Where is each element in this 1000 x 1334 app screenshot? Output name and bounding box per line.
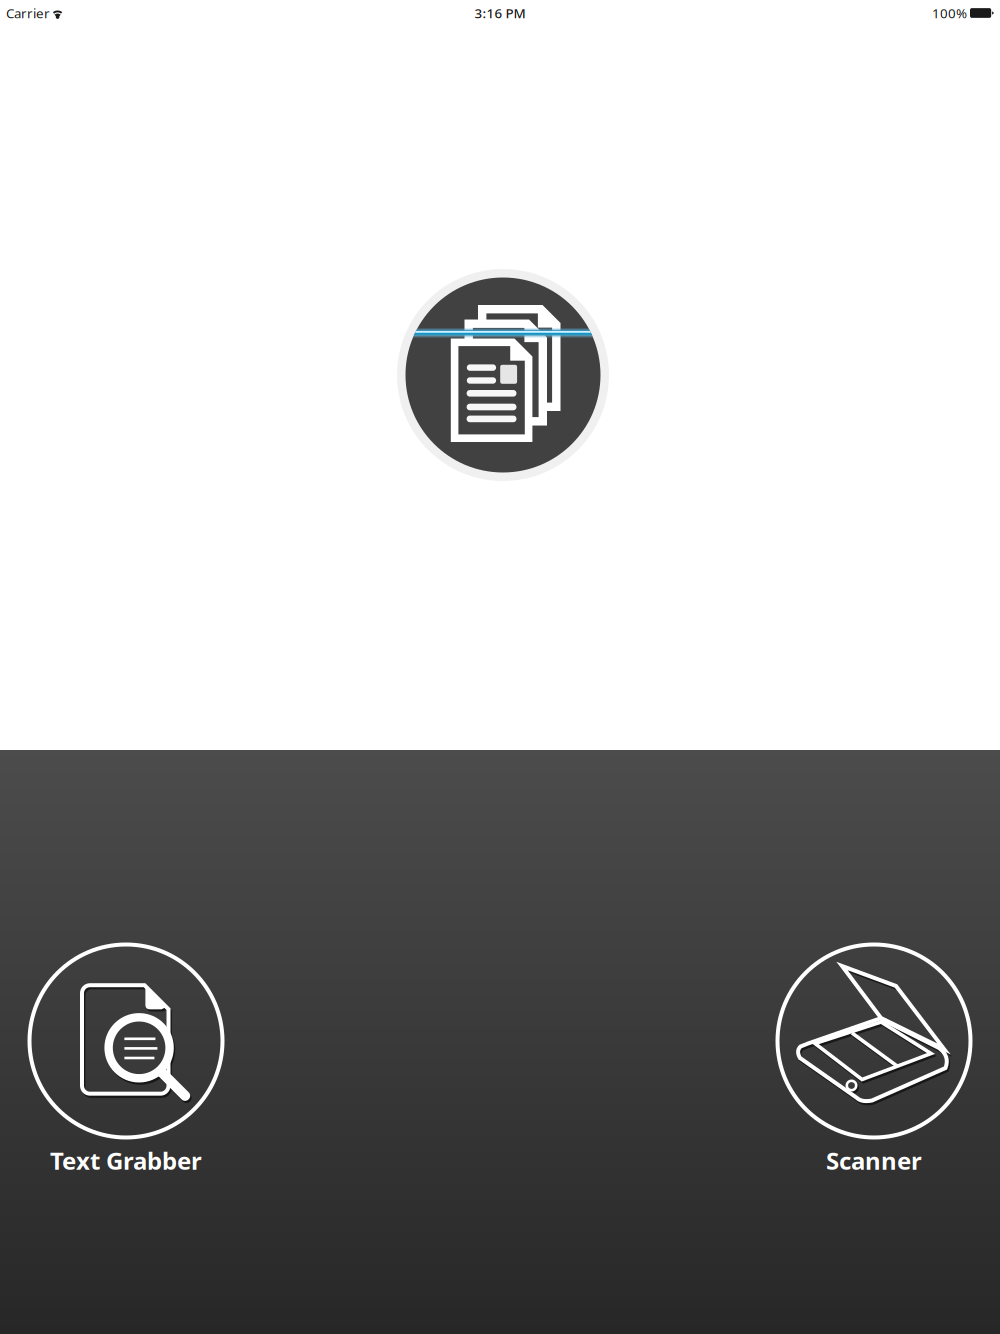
staticText: Carrier bbox=[6, 4, 50, 22]
staticText: Text Grabber bbox=[50, 1144, 202, 1176]
staticText: Scanner bbox=[826, 1144, 922, 1176]
button[interactable]: Scanner bbox=[748, 920, 1000, 1200]
staticText: 100% bbox=[932, 4, 967, 22]
button[interactable]: Text Grabber bbox=[0, 920, 252, 1200]
staticText: 3:16 PM bbox=[474, 4, 525, 22]
